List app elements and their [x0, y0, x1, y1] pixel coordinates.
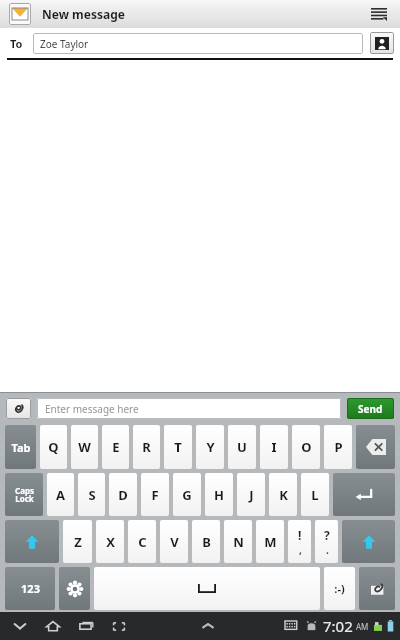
staticText: Zoe Taylor	[40, 37, 89, 51]
staticText: V	[170, 533, 179, 551]
staticText: I	[271, 438, 277, 456]
staticText: H	[214, 486, 224, 504]
button[interactable]: O	[292, 425, 320, 469]
staticText: B	[202, 533, 211, 551]
staticText: Y	[206, 438, 215, 456]
staticText: C	[138, 533, 147, 551]
staticText: !	[298, 527, 302, 543]
button[interactable]: C	[128, 520, 156, 563]
button[interactable]: Recent apps	[74, 614, 98, 638]
staticText: 7:02	[323, 616, 353, 636]
button[interactable]: Zoe Taylor	[33, 33, 363, 54]
button[interactable]: U	[228, 425, 256, 469]
staticText: N	[233, 533, 244, 551]
staticText: Caps Lock	[15, 485, 34, 504]
staticText: :-)	[334, 581, 345, 596]
button[interactable]: L	[301, 473, 329, 516]
staticText: G	[182, 486, 192, 504]
staticText: ?	[324, 527, 330, 543]
button[interactable]: App icon	[9, 3, 31, 25]
button[interactable]: Choose contact	[370, 32, 394, 54]
staticText: E	[112, 438, 120, 456]
button[interactable]: A	[47, 473, 74, 516]
button[interactable]: T	[164, 425, 192, 469]
button[interactable]: E	[102, 425, 129, 469]
button[interactable]: H	[205, 473, 233, 516]
button[interactable]: Back	[8, 614, 32, 638]
button[interactable]: W	[71, 425, 98, 469]
button[interactable]: K	[269, 473, 297, 516]
staticText: X	[106, 533, 115, 551]
button[interactable]: Y	[196, 425, 224, 469]
button[interactable]: Shift	[342, 520, 395, 563]
button[interactable]: Q	[40, 425, 67, 469]
button[interactable]: !	[288, 520, 311, 563]
button[interactable]: :-)	[324, 567, 355, 610]
staticText: New message	[42, 6, 125, 22]
button[interactable]: Send	[347, 398, 394, 419]
button[interactable]: D	[109, 473, 137, 516]
button[interactable]: I	[260, 425, 288, 469]
staticText: F	[151, 486, 159, 504]
button[interactable]: J	[237, 473, 265, 516]
button[interactable]: M	[256, 520, 284, 563]
staticText: L	[311, 486, 319, 504]
staticText: AM	[356, 621, 369, 632]
button[interactable]: X	[96, 520, 124, 563]
staticText: T	[174, 438, 182, 456]
button[interactable]: N	[224, 520, 252, 563]
staticText: R	[142, 438, 151, 456]
button[interactable]: V	[160, 520, 188, 563]
staticText: J	[249, 486, 254, 504]
button[interactable]: Home	[41, 614, 65, 638]
button[interactable]: P	[324, 425, 352, 469]
button[interactable]: Full screen	[107, 614, 131, 638]
staticText: .	[326, 543, 329, 557]
button[interactable]: Attach	[6, 398, 31, 419]
button[interactable]: S	[78, 473, 105, 516]
button[interactable]: Enter message here	[37, 398, 341, 419]
staticText: To	[10, 36, 23, 51]
staticText: 123	[21, 581, 40, 596]
button[interactable]: R	[133, 425, 160, 469]
staticText: P	[334, 438, 343, 456]
staticText: O	[301, 438, 312, 456]
button[interactable]: Menu	[364, 1, 394, 27]
staticText: U	[237, 438, 247, 456]
staticText: Enter message here	[45, 402, 139, 416]
button[interactable]: Expand	[197, 615, 219, 637]
staticText: D	[118, 486, 128, 504]
staticText: A	[56, 486, 65, 504]
button[interactable]: Space	[94, 567, 320, 610]
button[interactable]: Enter	[333, 473, 395, 516]
button[interactable]: Caps Lock	[5, 473, 43, 516]
staticText: Z	[74, 533, 82, 551]
staticText: Tab	[11, 440, 31, 455]
staticText: W	[78, 438, 91, 456]
staticText: Send	[358, 402, 383, 416]
button[interactable]: Shift	[5, 520, 59, 563]
button[interactable]: B	[192, 520, 220, 563]
button[interactable]: Tab	[5, 425, 36, 469]
button[interactable]: ?	[315, 520, 338, 563]
button[interactable]: Backspace	[356, 425, 395, 469]
staticText: S	[88, 486, 96, 504]
button[interactable]: Settings	[59, 567, 90, 610]
button[interactable]: F	[141, 473, 169, 516]
staticText: K	[279, 486, 288, 504]
button[interactable]: Attach	[359, 567, 395, 610]
button[interactable]: 123	[5, 567, 55, 610]
staticText: M	[264, 533, 277, 551]
button[interactable]: Z	[63, 520, 92, 563]
staticText: Q	[48, 438, 59, 456]
button[interactable]: G	[173, 473, 201, 516]
staticText: ,	[299, 543, 302, 557]
